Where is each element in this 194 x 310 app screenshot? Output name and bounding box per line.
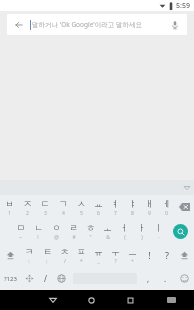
staticText: ㄹ [69,222,78,233]
staticText: ㅛ [94,198,103,209]
button[interactable]: Voice search [167,17,183,33]
button[interactable]: ㅊ [56,243,73,267]
button[interactable]: Back [40,290,65,310]
button[interactable]: ! [141,243,158,267]
button[interactable]: Shift [175,243,194,267]
button[interactable]: ㅗ [99,219,116,243]
staticText: 3 [44,210,47,217]
button[interactable]: ㄹ [65,219,82,243]
staticText: ㅠ [94,246,103,257]
button[interactable]: ㄷ [36,195,54,219]
button[interactable]: ㅑ [124,195,141,219]
staticText: & [106,234,110,241]
button[interactable]: ㅍ [73,243,90,267]
staticText: ㅕ [111,198,120,209]
staticText: ㅅ [77,198,86,209]
button[interactable]: ㅇ [47,219,65,243]
staticText: , [147,273,150,284]
staticText: _ [97,258,100,265]
button[interactable]: ㄴ [29,219,47,243]
staticText: ㅁ [16,222,25,233]
button[interactable]: . [157,267,174,290]
button[interactable]: ㅂ [0,195,18,219]
button[interactable]: ㅜ [107,243,124,267]
button[interactable]: ㅓ [116,219,133,243]
staticText: / [44,273,47,284]
staticText: ㅇ [52,222,61,233]
staticText: ! [148,249,151,261]
staticText: : [28,258,30,265]
staticText: ㅋ [25,246,34,257]
button[interactable]: ㅡ [124,243,141,267]
button[interactable]: Home [78,290,104,310]
staticText: ; [46,258,48,265]
button[interactable]: ㅅ [72,195,90,219]
button[interactable]: Back [12,18,26,32]
button[interactable]: ㅣ [150,219,167,243]
staticText: ( [124,234,126,241]
staticText: ㅐ [145,198,154,209]
staticText: ㅔ [162,198,171,209]
staticText: ㄷ [41,198,50,209]
staticText: ㅌ [43,246,52,257]
button[interactable]: Back [7,14,187,35]
button[interactable]: Change language [53,267,70,290]
button[interactable]: Recent apps [117,290,143,310]
staticText: 5:59 [176,1,190,11]
staticText: ?123 [4,275,17,283]
button[interactable]: Keyboard settings [21,267,37,290]
button[interactable]: Switch keyboard [158,290,184,310]
staticText: ~ [19,234,22,241]
button[interactable]: Search [167,219,194,243]
button[interactable]: ㅐ [141,195,158,219]
staticText: # [72,234,76,241]
staticText: * [80,258,83,265]
staticText: 7 [114,210,117,217]
staticText: ㅡ [128,246,137,257]
staticText: 6 [97,210,100,217]
staticText: 5 [80,210,83,217]
staticText: ㅓ [120,222,129,233]
button[interactable]: Shift [0,243,20,267]
staticText: ? [114,258,117,265]
staticText: ㅈ [23,198,32,209]
button[interactable]: ? [158,243,175,267]
button[interactable]: ㅋ [20,243,38,267]
staticText: 1 [8,210,11,217]
staticText: ㄴ [34,222,43,233]
staticText: ㅂ [5,198,14,209]
button[interactable]: ㅎ [82,219,99,243]
button[interactable]: / [37,267,53,290]
button[interactable]: Emoji [174,267,194,290]
staticText: 2 [26,210,29,217]
staticText: / [64,258,66,265]
staticText: ㅑ [128,198,137,209]
staticText: ㄱ [59,198,68,209]
button[interactable]: ㅌ [38,243,56,267]
staticText: ㅗ [103,222,112,233]
staticText: ) [141,234,143,241]
staticText: ㅎ [86,222,95,233]
button[interactable]: Expand suggestions [180,181,194,195]
button[interactable]: , [140,267,157,290]
button[interactable]: ㅕ [107,195,124,219]
staticText: . [164,273,167,284]
staticText: ? [165,249,169,261]
staticText: ㅣ [154,222,163,233]
button[interactable]: ㅛ [90,195,107,219]
button[interactable]: ㅁ [11,219,29,243]
button[interactable]: ㅏ [133,219,150,243]
staticText: @ [54,234,59,241]
staticText: ! [37,234,39,241]
button[interactable]: ㅈ [18,195,36,219]
button[interactable]: ㅔ [158,195,175,219]
button[interactable]: ㄱ [54,195,72,219]
button[interactable]: ㅠ [90,243,107,267]
staticText: + [131,258,134,265]
button[interactable]: Backspace [175,195,194,219]
staticText: ㅊ [60,246,69,257]
button[interactable]: ?123 [0,267,21,290]
staticText: ㅏ [137,222,146,233]
staticText: 0 [165,210,168,217]
